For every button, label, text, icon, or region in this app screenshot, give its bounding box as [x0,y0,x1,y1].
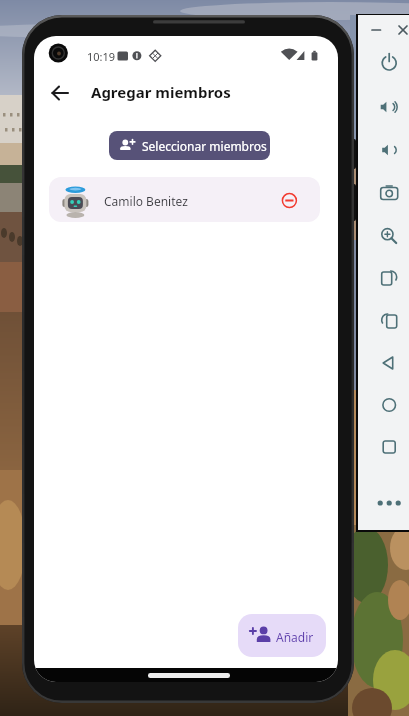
button[interactable] [375,93,403,121]
button[interactable] [375,222,403,250]
staticText: 10:19 [87,49,116,64]
button[interactable] [375,391,403,419]
button[interactable] [375,489,403,517]
button[interactable]: Seleccionar miembros [109,131,270,160]
button[interactable] [375,433,403,461]
button[interactable] [44,79,76,109]
staticText: Seleccionar miembros [142,138,267,154]
button[interactable]: Añadir [238,614,326,657]
button[interactable] [375,349,403,377]
button[interactable] [277,188,302,213]
staticText: Camilo Benitez [104,193,188,209]
button[interactable] [375,49,403,77]
button[interactable] [375,307,403,335]
button[interactable] [375,179,403,207]
button[interactable] [395,22,409,38]
button[interactable] [368,22,384,38]
button[interactable]: Camilo Benitez [49,177,320,222]
staticText: Añadir [276,629,314,645]
staticText: Agregar miembros [91,82,231,102]
button[interactable] [375,264,403,292]
button[interactable] [148,673,230,678]
button[interactable] [375,136,403,164]
